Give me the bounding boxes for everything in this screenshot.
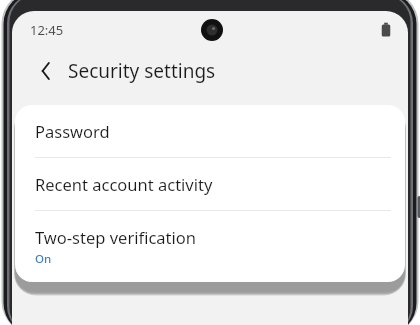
staticText: Two-step verification	[35, 226, 196, 248]
button[interactable]: Recent account activity	[15, 158, 405, 210]
staticText: On	[35, 251, 52, 267]
staticText: Security settings	[68, 58, 216, 84]
other: Battery	[380, 22, 392, 37]
staticText: Password	[35, 120, 110, 142]
staticText: Recent account activity	[35, 173, 213, 195]
button[interactable]: Password	[15, 105, 405, 157]
staticText: 12:45	[30, 21, 64, 39]
button[interactable]: Back	[32, 58, 58, 84]
button[interactable]: Two-step verification	[15, 211, 405, 282]
